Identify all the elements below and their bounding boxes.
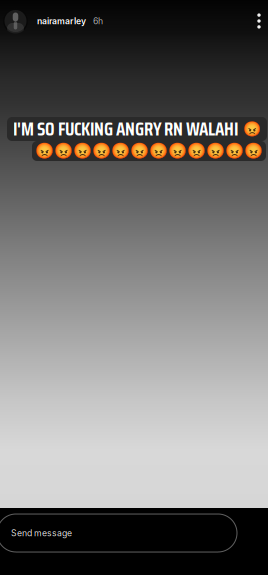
button[interactable]: Send message: [0, 514, 237, 552]
staticText: I'M SO FUCKING ANGRY RN WALAHI: [13, 114, 238, 144]
staticText: Send message: [11, 528, 72, 538]
staticText: 6h: [93, 16, 103, 26]
button[interactable]: Profile photo: [3, 8, 28, 33]
staticText: 😡😡😡😡😡😡😡😡😡😡😡😡: [35, 142, 263, 160]
staticText: 😡: [243, 120, 261, 138]
button[interactable]: More options: [251, 7, 267, 35]
staticText: nairamarley: [37, 16, 86, 26]
